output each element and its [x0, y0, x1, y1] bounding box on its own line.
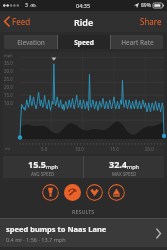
- staticText: Elevation: [17, 38, 45, 47]
- staticText: 15.5: [28, 158, 46, 170]
- staticText: 32.4: [109, 158, 127, 170]
- staticText: mph: [4, 53, 13, 58]
- button[interactable]: 32.4: [84, 156, 164, 178]
- button[interactable]: 15.5: [3, 156, 83, 178]
- staticText: 10.0: [75, 146, 84, 152]
- button[interactable]: Power: [108, 184, 125, 201]
- staticText: mph: [46, 163, 58, 170]
- button[interactable]: Heart Rate: [86, 184, 103, 201]
- staticText: 5.0: [41, 146, 48, 152]
- button[interactable]: Speed: [64, 184, 81, 201]
- staticText: 0.4 mi · 1:56 · 13.7 mph: [6, 236, 66, 243]
- staticText: Heart Rate: [121, 38, 154, 47]
- button[interactable]: Share: [135, 12, 167, 31]
- staticText: RESULTS: [72, 208, 95, 215]
- staticText: MAX SPEED: [112, 171, 137, 177]
- staticText: 10.0: [4, 100, 13, 106]
- button[interactable]: Heart Rate: [111, 35, 163, 49]
- staticText: speed bumps to Naas Lane: [6, 224, 107, 234]
- button[interactable]: Elevation: [4, 35, 57, 49]
- staticText: 20.0: [4, 84, 13, 90]
- staticText: 89%: [141, 2, 151, 9]
- staticText: Ride: [74, 16, 94, 28]
- button[interactable]: Speed: [58, 35, 110, 49]
- button[interactable]: speed bumps to Naas Lane: [0, 219, 167, 247]
- staticText: Speed: [74, 38, 94, 47]
- button[interactable]: Feed: [0, 13, 37, 30]
- staticText: 35.0: [4, 60, 13, 66]
- staticText: 15.0: [4, 92, 13, 98]
- button[interactable]: Segments: [42, 184, 59, 201]
- staticText: 15.0: [110, 146, 119, 152]
- staticText: 30.0: [4, 68, 13, 74]
- staticText: 20.0: [145, 146, 154, 152]
- staticText: mi: [5, 146, 10, 151]
- staticText: mph: [127, 163, 139, 170]
- staticText: 25.0: [4, 76, 13, 82]
- staticText: 04:35: [76, 2, 91, 9]
- staticText: Feed: [12, 16, 31, 27]
- staticText: 3: [25, 2, 28, 9]
- staticText: AVG SPEED: [31, 171, 55, 177]
